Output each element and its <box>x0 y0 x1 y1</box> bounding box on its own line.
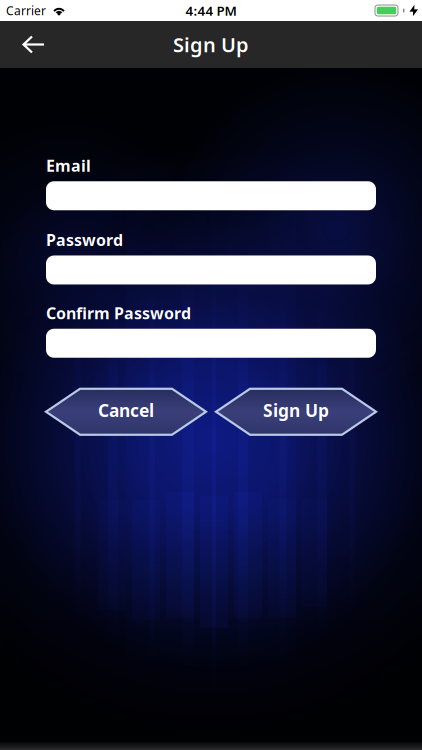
staticText: Sign Up <box>173 31 249 58</box>
button[interactable] <box>46 181 376 210</box>
staticText: Confirm Password <box>46 302 191 324</box>
button[interactable] <box>0 21 44 68</box>
staticText: 4:44 PM <box>185 2 236 19</box>
button[interactable]: Cancel <box>46 389 206 435</box>
staticText: Cancel <box>98 399 154 422</box>
button[interactable] <box>46 255 376 284</box>
button[interactable]: Sign Up <box>216 389 376 435</box>
staticText: Carrier <box>6 2 46 18</box>
button[interactable] <box>46 329 376 358</box>
staticText: Email <box>46 155 91 176</box>
staticText: Password <box>46 229 123 250</box>
staticText: Sign Up <box>263 399 329 422</box>
